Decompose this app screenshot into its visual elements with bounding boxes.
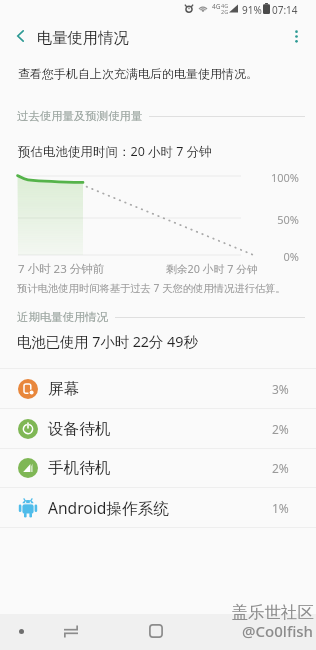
staticText: 1% — [272, 500, 289, 516]
staticText: 电量使用情况 — [37, 28, 129, 47]
staticText: 2% — [272, 460, 289, 476]
staticText: 电池已使用 7小时 22分 49秒 — [17, 332, 198, 352]
staticText: 设备待机 — [48, 419, 111, 439]
staticText: 3% — [272, 381, 289, 397]
staticText: 过去使用量及预测使用量 — [17, 109, 143, 123]
staticText: 07:14 — [272, 3, 298, 17]
staticText: 2% — [272, 421, 289, 437]
staticText: 查看您手机自上次充满电后的电量使用情况。 — [18, 66, 258, 81]
staticText: 剩余20 小时 7 分钟 — [166, 261, 258, 276]
staticText: 7 小时 23 分钟前 — [18, 261, 105, 277]
staticText: 手机待机 — [48, 458, 111, 478]
button[interactable]: Android操作系统 — [0, 488, 316, 527]
staticText: 0% — [0, 249, 299, 264]
staticText: @Co0lfish — [0, 621, 313, 641]
button[interactable]: 手机待机 — [0, 448, 316, 487]
button[interactable]: Home — [140, 615, 172, 647]
button[interactable]: Menu — [5, 615, 37, 647]
staticText: 4G — [221, 2, 229, 9]
staticText: 100% — [0, 170, 299, 185]
staticText: 预计电池使用时间将基于过去 7 天您的使用情况进行估算。 — [17, 281, 286, 295]
button[interactable]: 屏幕 — [0, 369, 316, 408]
staticText: 50% — [0, 212, 299, 227]
staticText: 预估电池使用时间：20 小时 7 分钟 — [18, 143, 212, 160]
staticText: 4G — [212, 2, 221, 11]
button[interactable]: Back — [4, 20, 36, 52]
button[interactable]: Recents — [55, 615, 87, 647]
staticText: 2G — [221, 8, 229, 15]
staticText: 盖乐世社区 — [0, 602, 314, 623]
staticText: 近期电量使用情况 — [17, 310, 109, 324]
button[interactable]: 设备待机 — [0, 409, 316, 448]
staticText: 91% — [242, 3, 262, 17]
staticText: Android操作系统 — [48, 497, 169, 518]
staticText: 屏幕 — [48, 379, 80, 399]
button[interactable]: More options — [280, 20, 312, 52]
